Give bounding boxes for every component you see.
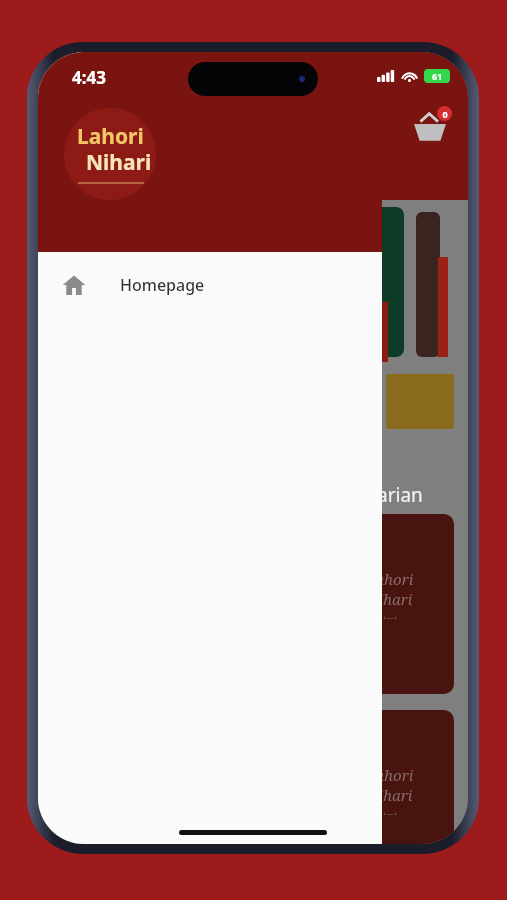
- staticText: •—•: [383, 612, 398, 623]
- staticText: Lahori: [77, 122, 144, 151]
- staticText: 0: [442, 108, 448, 120]
- staticText: Nihari: [367, 785, 413, 805]
- staticText: •—•: [383, 808, 398, 819]
- staticText: Lahori: [366, 765, 414, 785]
- staticText: 61: [432, 70, 443, 82]
- button[interactable]: Lahori: [326, 514, 454, 694]
- button[interactable]: Homepage: [38, 256, 382, 314]
- button[interactable]: Cart: [406, 104, 454, 152]
- staticText: Nihari: [86, 148, 152, 177]
- button[interactable]: Lahori: [326, 710, 454, 844]
- staticText: Lahori: [366, 569, 414, 589]
- staticText: Nihari: [367, 589, 413, 609]
- staticText: Homepage: [120, 274, 205, 296]
- staticText: Vegetarian: [326, 482, 423, 508]
- staticText: 4:43: [72, 66, 106, 89]
